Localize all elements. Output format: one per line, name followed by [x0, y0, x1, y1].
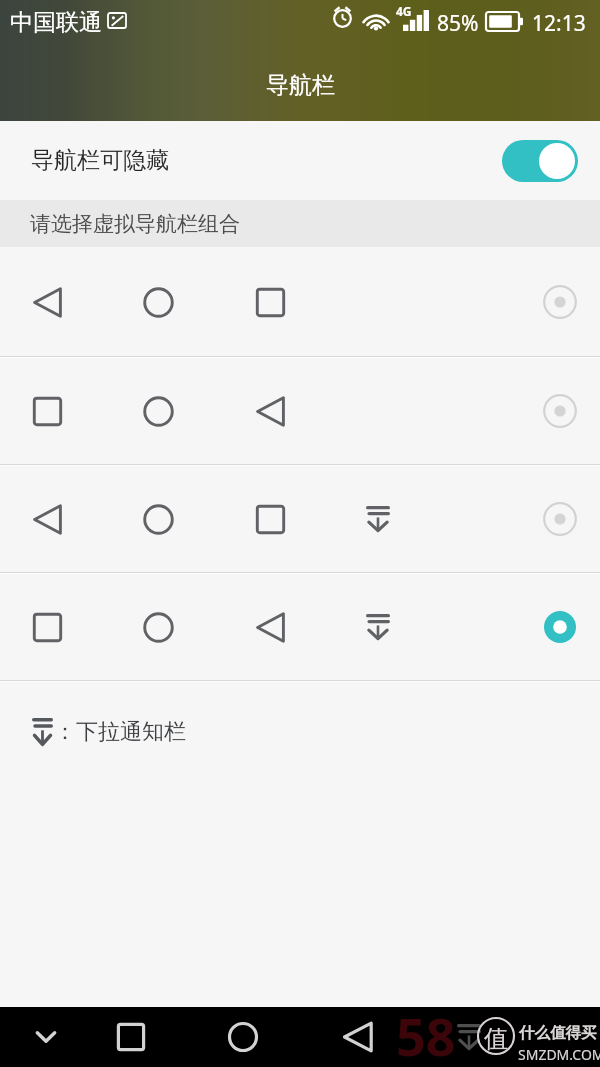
staticText: 导航栏可隐藏	[31, 146, 169, 175]
button[interactable]: Hide navigation bar	[19, 1007, 73, 1067]
button[interactable]	[0, 466, 600, 572]
button[interactable]: Home	[216, 1007, 270, 1067]
staticText: 值	[484, 1024, 508, 1054]
staticText: 请选择虚拟导航栏组合	[30, 211, 240, 237]
staticText: 导航栏	[266, 71, 335, 100]
button[interactable]: Recent apps	[104, 1007, 158, 1067]
button[interactable]	[0, 358, 600, 464]
staticText: 4G	[396, 3, 412, 19]
staticText: SMZDM.COM	[518, 1045, 600, 1064]
button[interactable]	[0, 247, 600, 356]
staticText: 85%	[437, 9, 479, 38]
button[interactable]	[0, 574, 600, 680]
staticText: 什么值得买	[519, 1023, 597, 1043]
button[interactable]: Back	[331, 1007, 385, 1067]
staticText: ：下拉通知栏	[54, 718, 186, 746]
button[interactable]: 导航栏可隐藏	[0, 121, 600, 200]
staticText: 12:13	[532, 9, 586, 38]
staticText: 中国联通	[10, 8, 102, 37]
button[interactable]: Toggle navigation bar hiding	[502, 140, 578, 182]
staticText: 58	[396, 1000, 456, 1060]
